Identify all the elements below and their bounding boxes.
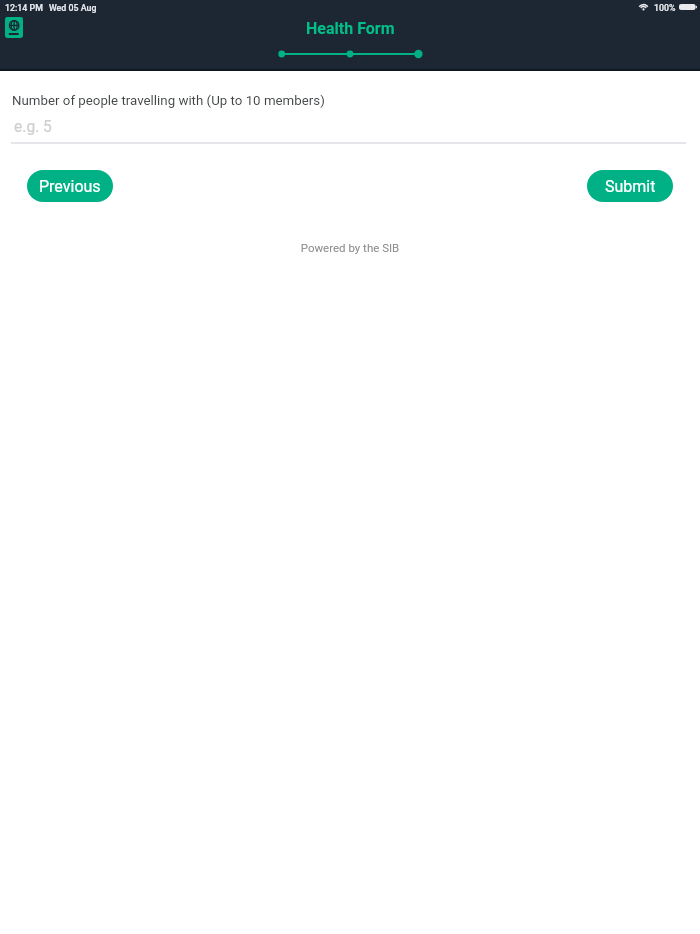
button[interactable]: Passport [5, 17, 23, 38]
staticText: 100% [654, 3, 676, 13]
button[interactable]: e.g. 5 [0, 112, 700, 142]
staticText: Powered by the SIB [0, 241, 700, 254]
staticText: 12:14 PM [5, 3, 43, 13]
staticText: Health Form [306, 19, 395, 38]
staticText: Number of people travelling with (Up to … [12, 93, 325, 109]
staticText: Submit [605, 177, 656, 196]
staticText: Previous [39, 177, 101, 196]
staticText: Wed 05 Aug [49, 3, 97, 13]
button[interactable]: Previous [27, 170, 113, 202]
button[interactable]: Submit [587, 170, 673, 202]
staticText: e.g. 5 [14, 118, 52, 136]
